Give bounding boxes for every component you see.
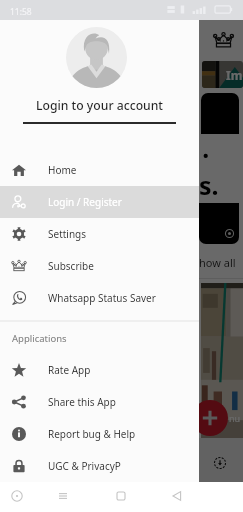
staticText: Applications (12, 332, 67, 345)
staticText: Rate App (48, 363, 91, 377)
staticText: Share this App (48, 395, 116, 409)
staticText: Whatsapp Status Saver (48, 291, 156, 305)
button[interactable]: Login / Register (0, 186, 199, 218)
button[interactable]: Login to your account (0, 97, 199, 114)
button[interactable]: Add (192, 400, 228, 436)
staticText: nu k (229, 412, 243, 424)
button[interactable]: Share this App (0, 386, 199, 418)
staticText: Home (48, 163, 77, 177)
button[interactable]: Recents (53, 486, 73, 506)
button[interactable]: UGC & PrivacyP (0, 450, 199, 482)
staticText: how all (199, 255, 236, 270)
button[interactable]: Subscribe (0, 250, 199, 282)
staticText: Subscribe (48, 259, 94, 273)
button[interactable]: Home (0, 154, 199, 186)
button[interactable]: Report bug & Help (0, 418, 199, 450)
button[interactable]: Home (111, 486, 131, 506)
button[interactable]: Settings (0, 218, 199, 250)
button[interactable]: Whatsapp Status Saver (0, 282, 199, 314)
staticText: Login / Register (48, 195, 122, 209)
staticText: Settings (48, 227, 87, 241)
staticText: s. (199, 168, 219, 202)
button[interactable]: Assistant (7, 486, 27, 506)
button[interactable]: Back (167, 486, 187, 506)
staticText: Report bug & Help (48, 427, 136, 441)
staticText: UGC & PrivacyP (48, 459, 121, 473)
staticText: 11:58 (10, 6, 32, 18)
button[interactable]: Rate App (0, 354, 199, 386)
staticText: Im (226, 67, 243, 83)
button[interactable]: Profile photo (66, 27, 127, 88)
